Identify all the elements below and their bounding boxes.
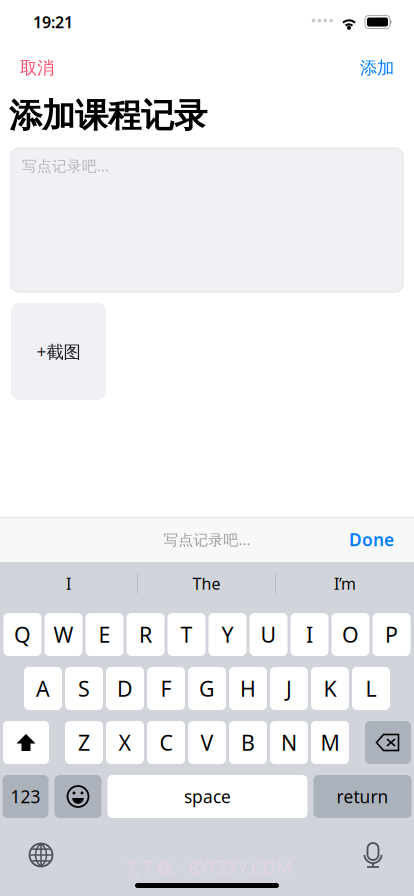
staticText: R: [139, 620, 152, 649]
button[interactable]: 添加: [356, 51, 398, 85]
staticText: H: [240, 674, 256, 703]
staticText: A: [36, 674, 50, 703]
staticText: Z: [78, 728, 90, 757]
staticText: O: [342, 620, 359, 649]
button[interactable]: C: [147, 721, 185, 764]
staticText: 飞下载 · BYFZXY.COM: [122, 856, 292, 879]
staticText: +截图: [36, 340, 80, 363]
button[interactable]: Dictate: [352, 838, 394, 872]
staticText: Y: [221, 620, 233, 649]
staticText: V: [200, 728, 213, 757]
button[interactable]: M: [311, 721, 349, 764]
button[interactable]: G: [188, 667, 226, 710]
button[interactable]: space: [107, 775, 307, 818]
button[interactable]: U: [249, 613, 287, 656]
staticText: E: [98, 620, 110, 649]
button[interactable]: K: [311, 667, 349, 710]
button[interactable]: +截图: [11, 303, 106, 400]
button[interactable]: The: [138, 562, 275, 604]
staticText: U: [260, 620, 276, 649]
button[interactable]: I: [0, 562, 137, 604]
staticText: return: [336, 785, 388, 808]
button[interactable]: 123: [2, 775, 48, 818]
staticText: Q: [14, 620, 31, 649]
staticText: I’m: [334, 573, 356, 594]
staticText: Done: [349, 528, 394, 551]
button[interactable]: Delete: [365, 721, 411, 764]
button[interactable]: V: [188, 721, 226, 764]
button[interactable]: I: [290, 613, 328, 656]
staticText: I: [306, 620, 313, 649]
button[interactable]: L: [352, 667, 390, 710]
staticText: K: [323, 674, 336, 703]
button[interactable]: J: [270, 667, 308, 710]
staticText: C: [159, 728, 172, 757]
button[interactable]: E: [85, 613, 123, 656]
staticText: T: [180, 620, 192, 649]
staticText: 123: [10, 785, 40, 808]
button[interactable]: return: [313, 775, 411, 818]
staticText: space: [184, 785, 231, 808]
button[interactable]: O: [331, 613, 369, 656]
button[interactable]: A: [24, 667, 62, 710]
staticText: The: [192, 573, 220, 594]
button[interactable]: Q: [3, 613, 41, 656]
button[interactable]: D: [106, 667, 144, 710]
staticText: 取消: [20, 57, 54, 79]
staticText: P: [385, 620, 398, 649]
button[interactable]: F: [147, 667, 185, 710]
staticText: 添加课程记录: [9, 95, 207, 136]
button[interactable]: Z: [65, 721, 103, 764]
staticText: J: [286, 674, 292, 703]
staticText: B: [241, 728, 255, 757]
button[interactable]: Switch keyboard: [20, 838, 62, 872]
button[interactable]: N: [270, 721, 308, 764]
staticText: W: [53, 620, 73, 649]
staticText: X: [118, 728, 131, 757]
button[interactable]: Shift: [3, 721, 49, 764]
staticText: 19:21: [33, 11, 73, 33]
staticText: 写点记录吧...: [22, 156, 109, 175]
button[interactable]: T: [167, 613, 205, 656]
button[interactable]: B: [229, 721, 267, 764]
staticText: 写点记录吧...: [163, 530, 250, 549]
staticText: 添加: [360, 57, 394, 79]
button[interactable]: W: [44, 613, 82, 656]
staticText: N: [281, 728, 297, 757]
staticText: L: [365, 674, 376, 703]
button[interactable]: R: [126, 613, 164, 656]
button[interactable]: X: [106, 721, 144, 764]
button[interactable]: Emoji: [54, 775, 101, 818]
staticText: D: [117, 674, 133, 703]
button[interactable]: P: [372, 613, 410, 656]
staticText: F: [160, 674, 171, 703]
button[interactable]: I’m: [276, 562, 414, 604]
staticText: M: [320, 728, 339, 757]
staticText: S: [78, 674, 90, 703]
button[interactable]: S: [65, 667, 103, 710]
staticText: I: [66, 573, 71, 594]
button[interactable]: Done: [343, 520, 400, 559]
button[interactable]: 取消: [16, 51, 58, 85]
staticText: G: [199, 674, 215, 703]
button[interactable]: H: [229, 667, 267, 710]
button[interactable]: Y: [208, 613, 246, 656]
